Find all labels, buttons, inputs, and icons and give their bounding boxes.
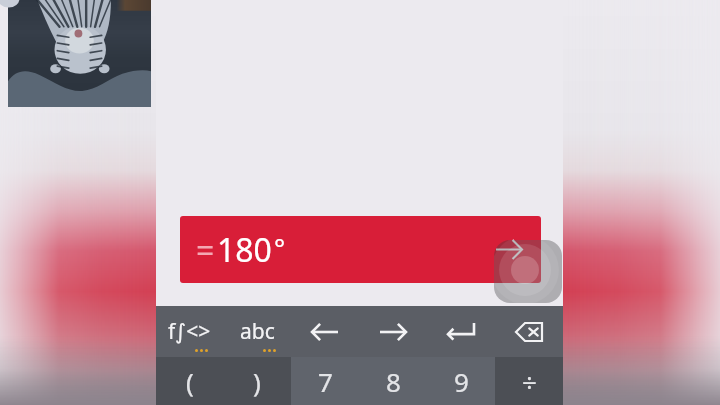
staticText: 9 bbox=[454, 364, 469, 399]
staticText: = bbox=[196, 228, 215, 272]
button[interactable]: Photo thumbnail bbox=[8, 0, 151, 107]
button[interactable]: Calculate bbox=[487, 227, 531, 271]
staticText: 7 bbox=[318, 364, 333, 399]
staticText: 180 bbox=[217, 228, 272, 272]
button[interactable]: f∫<> bbox=[156, 306, 223, 357]
button[interactable]: ÷ bbox=[495, 357, 563, 405]
button[interactable]: 8 bbox=[359, 357, 427, 405]
button[interactable]: abc bbox=[223, 306, 291, 357]
button[interactable]: ) bbox=[223, 357, 291, 405]
staticText: abc bbox=[240, 317, 275, 346]
staticText: ( bbox=[186, 364, 194, 399]
staticText: ) bbox=[253, 364, 261, 399]
staticText: f∫<> bbox=[168, 317, 211, 346]
button[interactable]: Backspace bbox=[495, 306, 563, 357]
button[interactable]: Move right bbox=[359, 306, 427, 357]
button[interactable]: 9 bbox=[427, 357, 495, 405]
button[interactable]: = bbox=[180, 216, 541, 283]
button[interactable]: ( bbox=[156, 357, 223, 405]
button[interactable]: Move left bbox=[291, 306, 359, 357]
button[interactable]: 7 bbox=[291, 357, 359, 405]
button[interactable]: Enter bbox=[427, 306, 495, 357]
staticText: 8 bbox=[386, 364, 401, 399]
staticText: ÷ bbox=[522, 364, 537, 399]
staticText: ° bbox=[274, 230, 286, 265]
